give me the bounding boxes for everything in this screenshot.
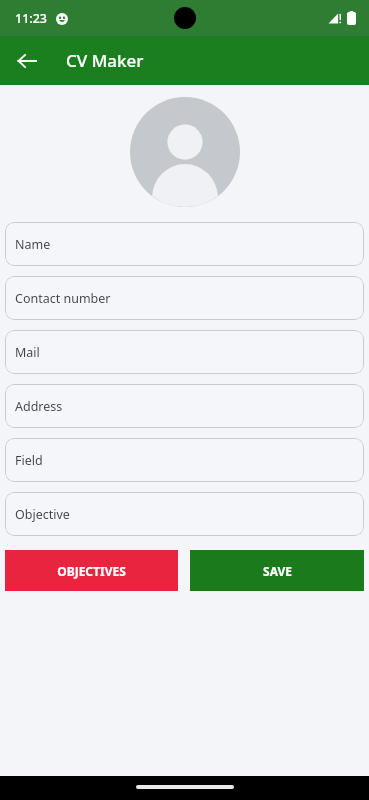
staticText: Objective (15, 506, 70, 523)
button[interactable]: Field (5, 438, 364, 482)
button[interactable]: SAVE (190, 550, 364, 591)
button[interactable]: Objective (5, 492, 364, 536)
staticText: Name (15, 236, 51, 253)
staticText: Field (15, 452, 43, 469)
button[interactable]: Address (5, 384, 364, 428)
staticText: SAVE (263, 563, 292, 579)
button[interactable]: OBJECTIVES (5, 550, 178, 591)
staticText: Mail (15, 344, 40, 361)
button[interactable]: Contact number (5, 276, 364, 320)
button[interactable]: Name (5, 222, 364, 266)
button[interactable]: Mail (5, 330, 364, 374)
staticText: Contact number (15, 290, 111, 307)
staticText: Address (15, 398, 63, 415)
staticText: 11:23 (15, 10, 48, 27)
staticText: CV Maker (66, 49, 144, 72)
staticText: OBJECTIVES (57, 563, 126, 579)
button[interactable]: Back (8, 42, 46, 80)
